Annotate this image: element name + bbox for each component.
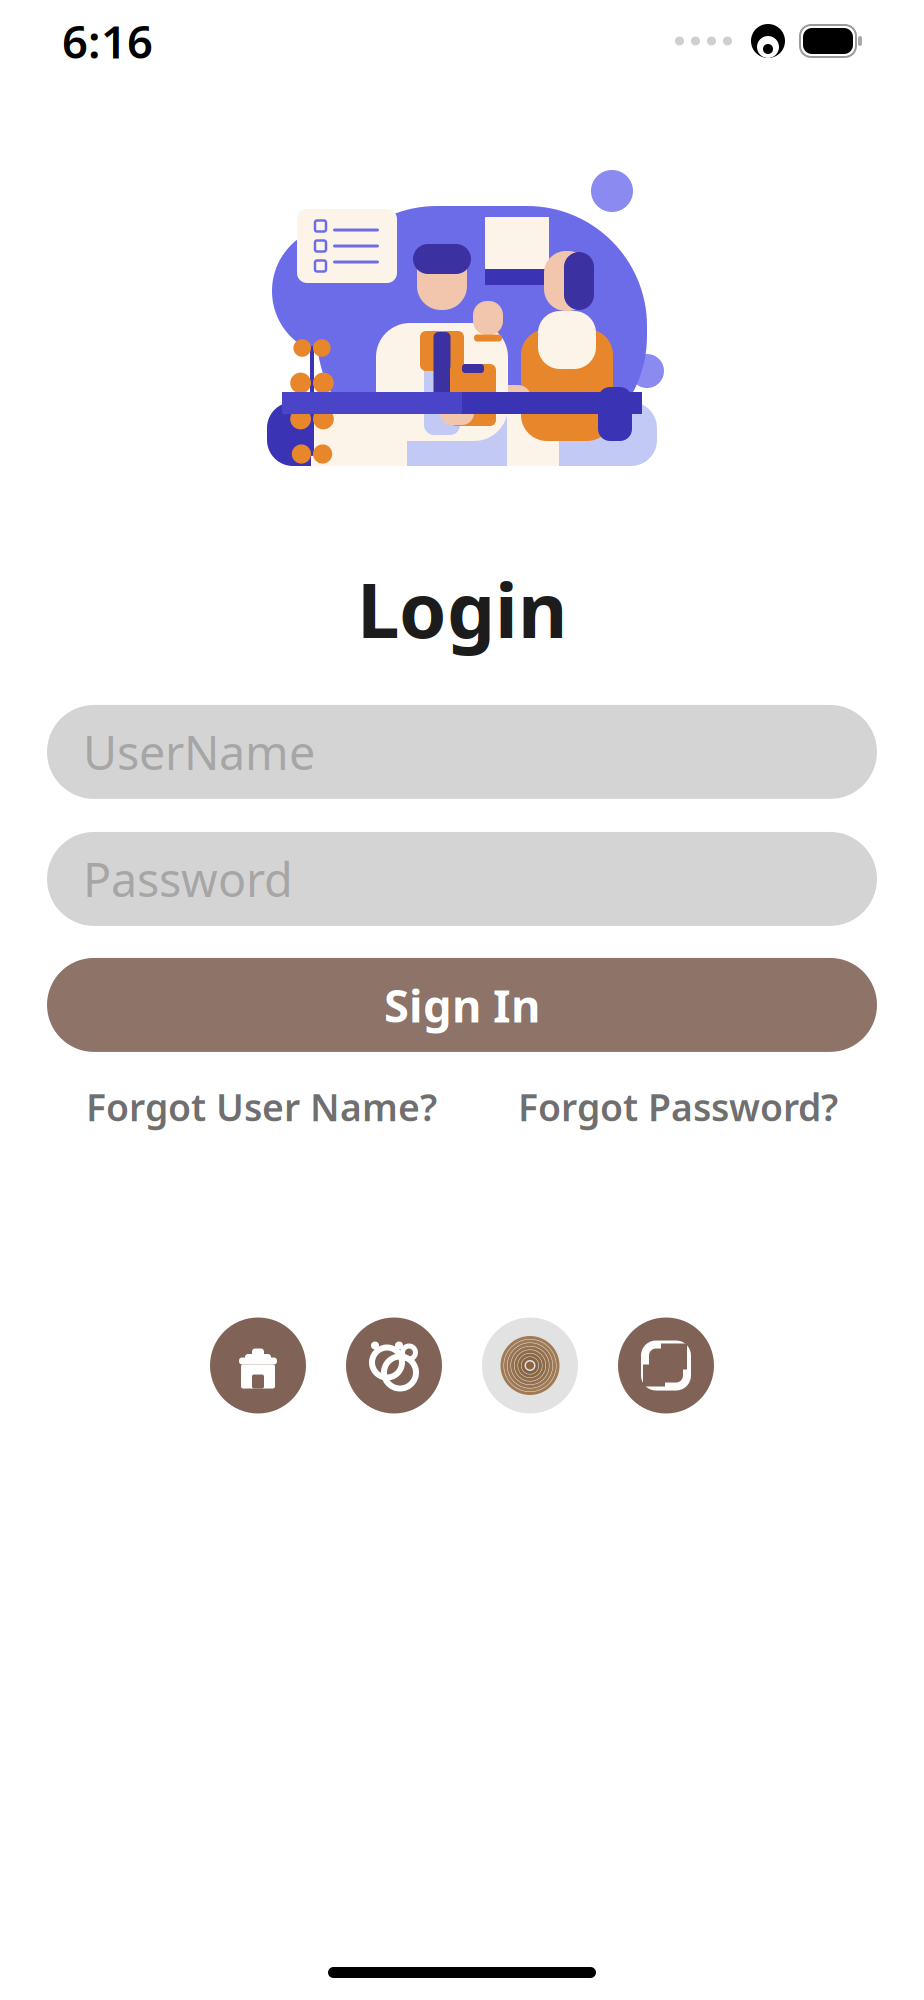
button[interactable]: Doctors xyxy=(346,1317,442,1413)
staticText: Forgot User Name? xyxy=(86,1082,437,1131)
button[interactable]: UserName xyxy=(47,705,877,799)
staticText: UserName xyxy=(83,721,315,783)
button[interactable]: Call xyxy=(618,1317,714,1413)
staticText: Sign In xyxy=(384,975,540,1035)
button[interactable]: Forgot Password? xyxy=(518,1082,838,1131)
button[interactable]: Forgot User Name? xyxy=(86,1082,437,1131)
staticText: Forgot Password? xyxy=(518,1082,838,1131)
staticText: 6:16 xyxy=(62,11,153,71)
button[interactable]: Sign In xyxy=(47,958,877,1052)
button[interactable]: Password xyxy=(47,832,877,926)
staticText: Password xyxy=(83,848,293,910)
button[interactable]: Home xyxy=(210,1317,306,1413)
staticText: Login xyxy=(357,558,567,659)
button[interactable]: Fingerprint login xyxy=(482,1317,578,1413)
